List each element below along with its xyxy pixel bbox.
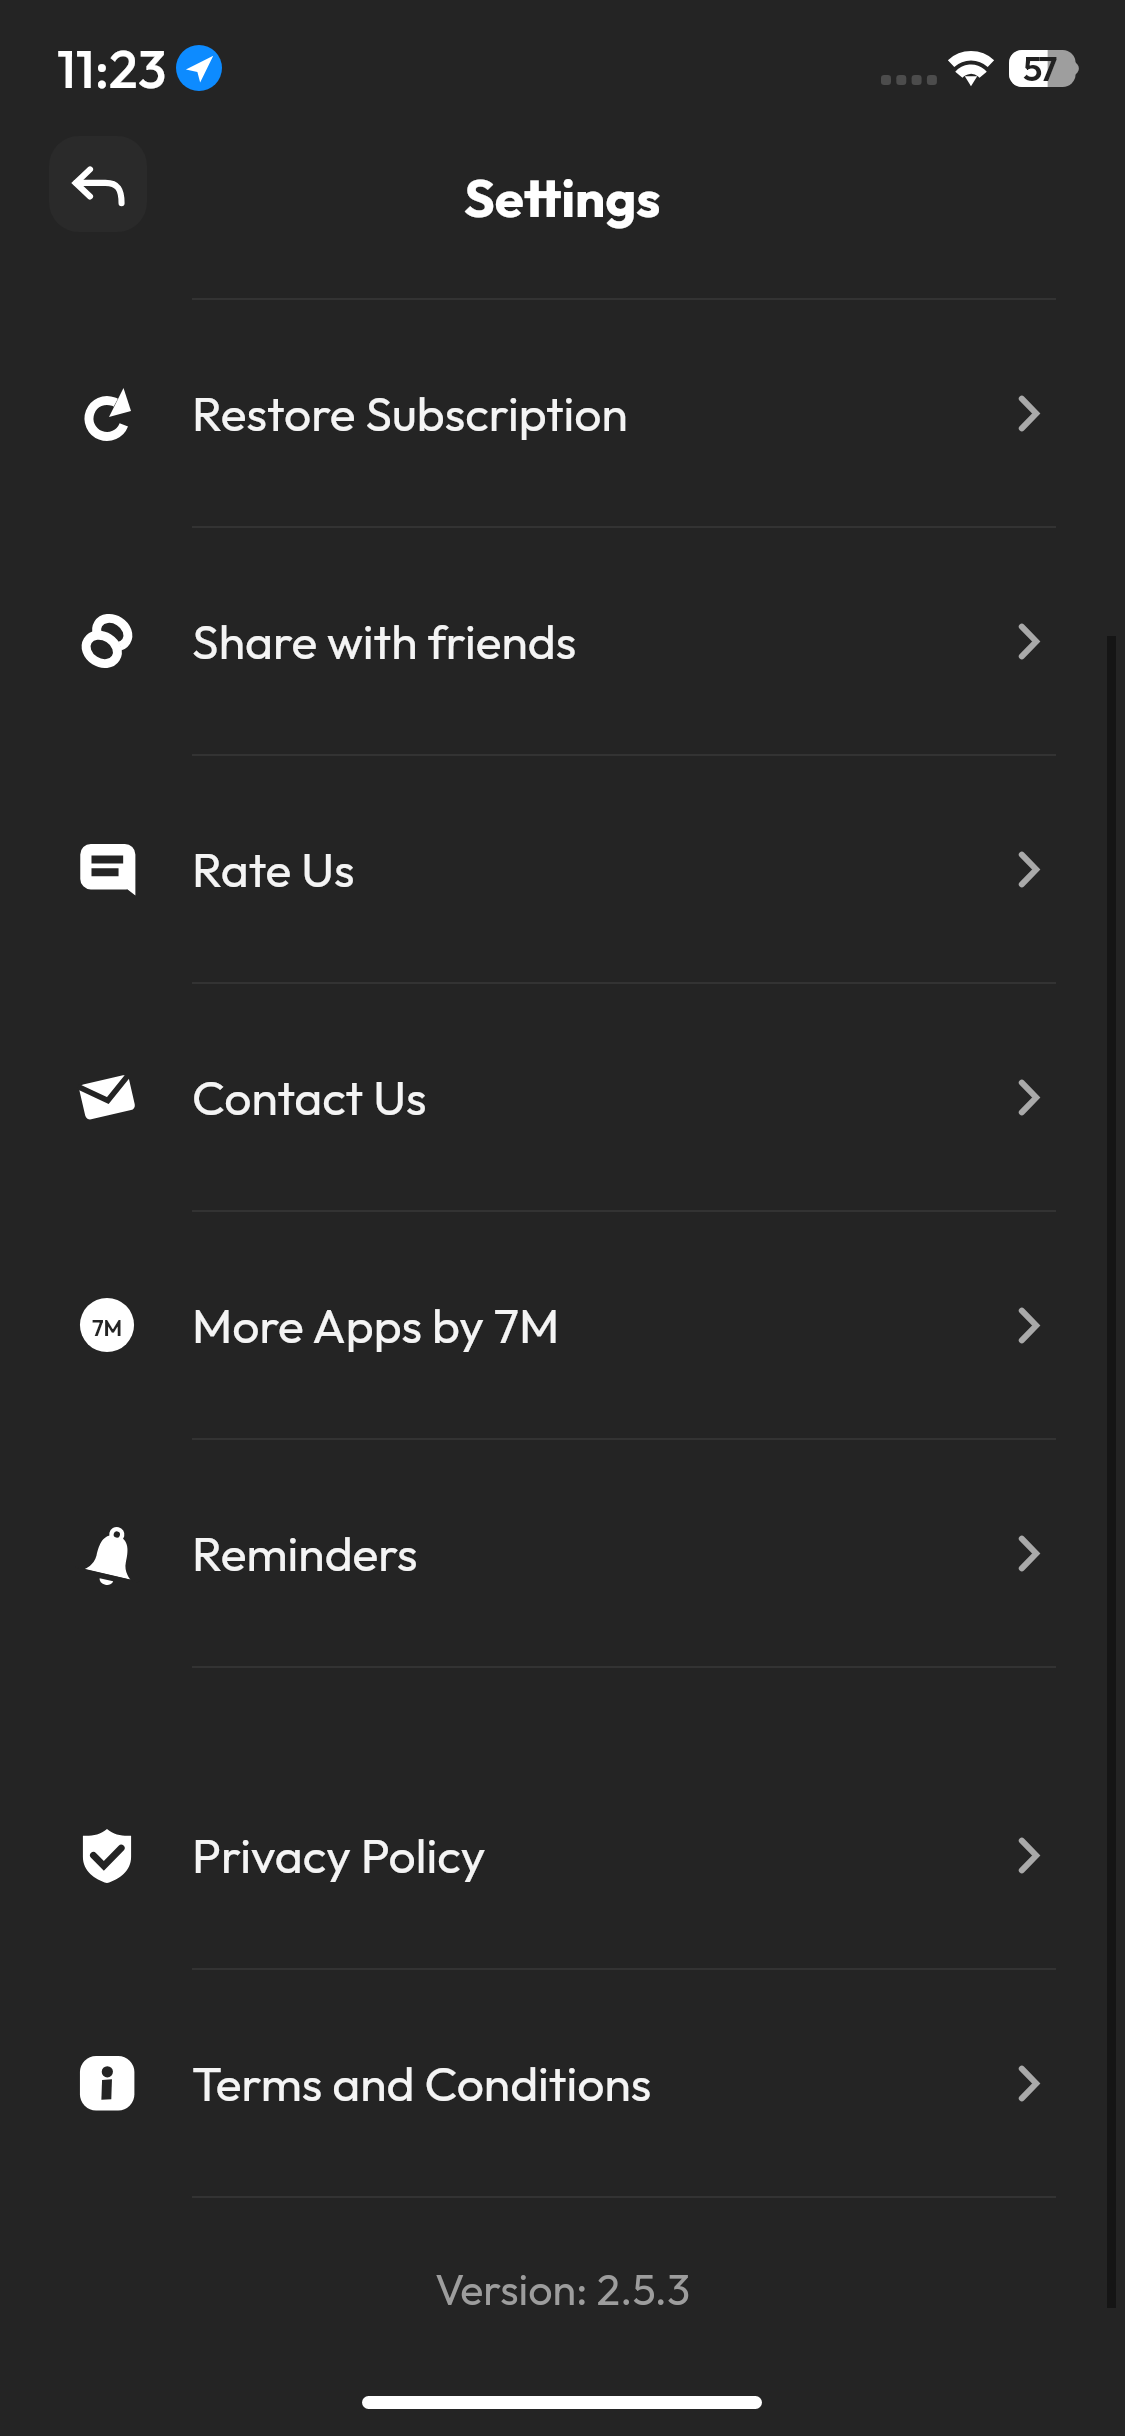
button[interactable]: Reminders [0,1440,1125,1666]
staticText: 7M [92,1314,123,1342]
button[interactable]: Rate Us [0,756,1125,982]
button[interactable]: Restore Subscription [0,300,1125,526]
staticText: Privacy Policy [192,1825,486,1885]
button[interactable]: Contact Us [0,984,1125,1210]
staticText: Rate Us [192,839,355,899]
staticText: 57 [1023,46,1055,90]
staticText: Contact Us [192,1067,427,1127]
button[interactable]: 7M [0,1212,1125,1438]
staticText: Restore Subscription [192,383,628,443]
staticText: Terms and Conditions [192,2053,652,2113]
staticText: Settings [464,164,661,231]
staticText: 11:23 [57,35,167,102]
staticText: Share with friends [192,611,577,671]
button[interactable]: Share with friends [0,528,1125,754]
staticText: Reminders [192,1523,418,1583]
staticText: More Apps by 7M [192,1295,560,1355]
button[interactable]: Terms and Conditions [0,1970,1125,2196]
staticText: Version: 2.5.3 [0,2262,1125,2316]
button[interactable]: Back [49,136,147,232]
button[interactable]: Privacy Policy [0,1742,1125,1968]
